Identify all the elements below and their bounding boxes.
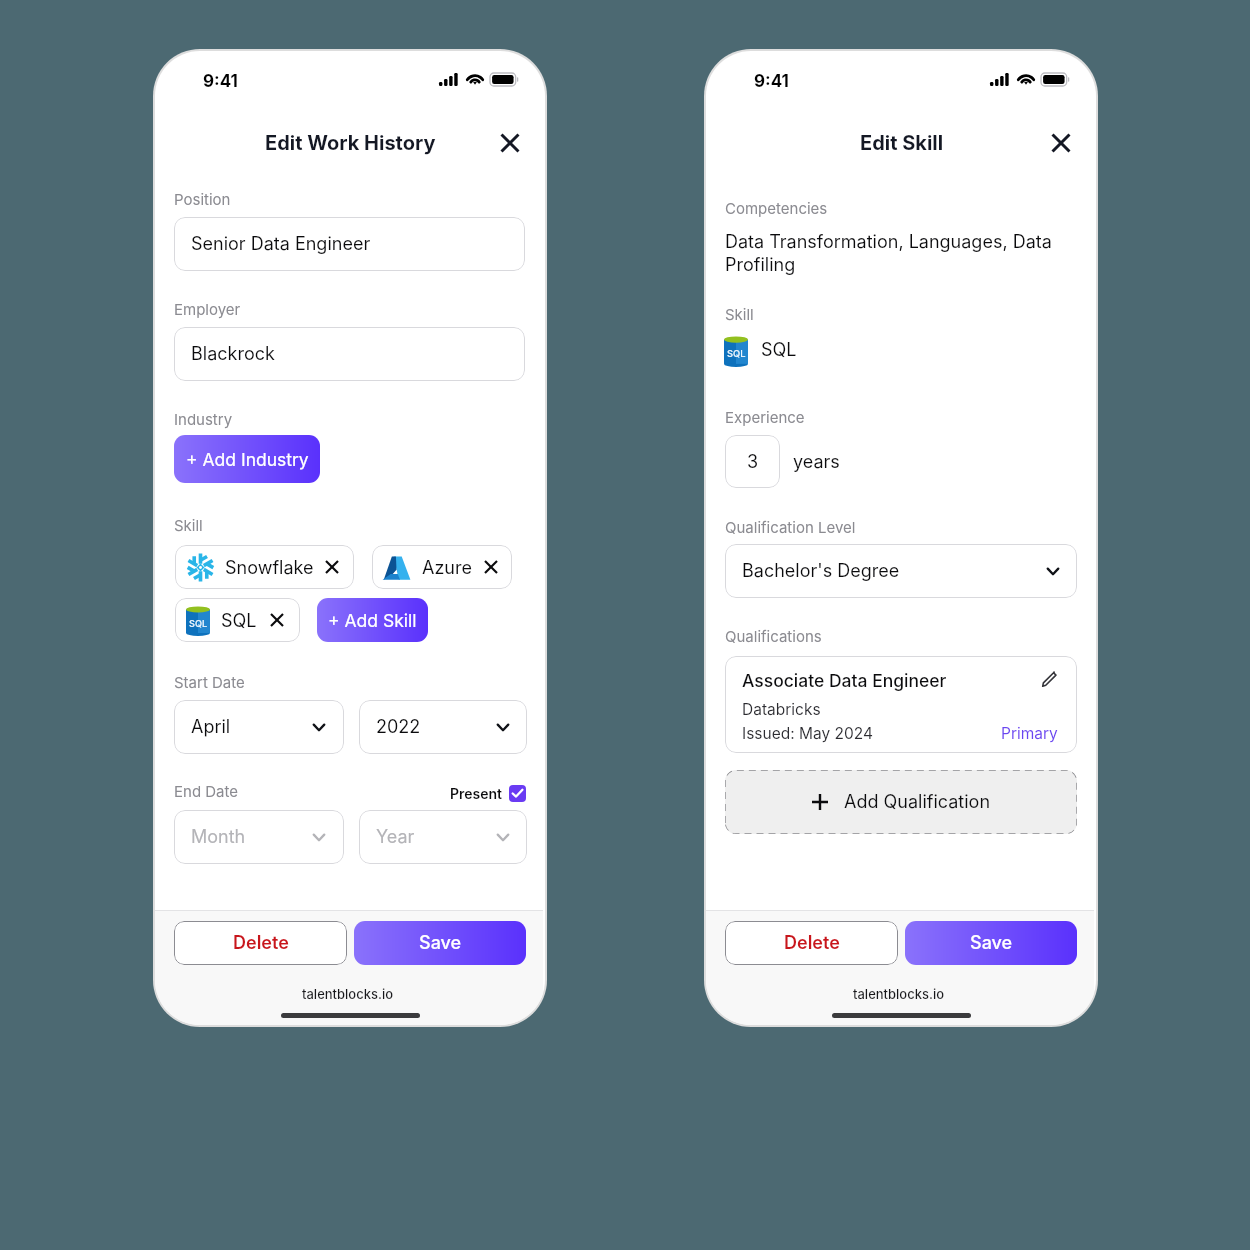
staticText: End Date <box>174 782 239 800</box>
staticText: years <box>793 451 840 473</box>
button[interactable]: Senior Data Engineer <box>174 217 525 271</box>
staticText: Issued: May 2024 <box>742 724 874 743</box>
staticText: Month <box>191 826 246 848</box>
staticText: Skill <box>725 305 754 323</box>
staticText: Bachelor's Degree <box>742 560 900 582</box>
staticText: Position <box>174 190 231 208</box>
button[interactable]: + Add Industry <box>174 435 320 483</box>
button[interactable]: Snowflake <box>175 545 354 589</box>
button[interactable]: Blackrock <box>174 327 525 381</box>
staticText: Save <box>419 932 462 954</box>
staticText: Primary <box>1001 724 1058 743</box>
staticText: Experience <box>725 408 805 426</box>
button[interactable]: Close <box>499 132 521 154</box>
staticText: Year <box>376 826 415 848</box>
staticText: Delete <box>784 932 840 954</box>
staticText: Associate Data Engineer <box>742 670 947 691</box>
staticText: 9:41 <box>203 71 238 92</box>
staticText: Databricks <box>742 700 821 719</box>
button[interactable]: 2022 <box>359 700 527 754</box>
button[interactable]: Month <box>174 810 344 864</box>
staticText: talentblocks.io <box>302 986 394 1002</box>
staticText: SQL <box>761 339 797 361</box>
button[interactable]: Edit qualification <box>1041 671 1058 688</box>
staticText: Qualification Level <box>725 518 856 536</box>
button[interactable]: 3 <box>725 435 780 488</box>
button[interactable]: Present <box>449 782 526 804</box>
button[interactable]: April <box>174 700 344 754</box>
button[interactable]: Year <box>359 810 527 864</box>
staticText: + Add Industry <box>186 449 309 470</box>
staticText: Present <box>450 785 503 802</box>
staticText: Start Date <box>174 673 245 691</box>
staticText: Add Qualification <box>844 791 991 813</box>
staticText: 9:41 <box>754 71 789 92</box>
staticText: Data Transformation, Languages, Data Pro… <box>725 231 1052 276</box>
button[interactable]: Bachelor's Degree <box>725 544 1077 598</box>
staticText: Competencies <box>725 199 828 217</box>
staticText: 3 <box>747 451 759 473</box>
staticText: Delete <box>233 932 289 954</box>
staticText: SQL <box>221 610 257 632</box>
staticText: April <box>191 716 231 738</box>
button[interactable]: SQL <box>175 598 300 642</box>
button[interactable]: + Add Skill <box>317 598 428 642</box>
staticText: Industry <box>174 410 233 428</box>
button[interactable]: Associate Data Engineer <box>725 656 1077 753</box>
button[interactable]: Save <box>354 921 526 965</box>
staticText: Blackrock <box>191 343 275 365</box>
staticText: Snowflake <box>225 557 314 579</box>
button[interactable]: Delete <box>174 921 347 965</box>
staticText: 2022 <box>376 716 421 738</box>
staticText: Employer <box>174 300 241 318</box>
staticText: Edit Work History <box>265 131 436 155</box>
button[interactable]: Delete <box>725 921 898 965</box>
staticText: Qualifications <box>725 627 822 645</box>
staticText: Azure <box>422 557 472 579</box>
staticText: Save <box>970 932 1013 954</box>
staticText: Skill <box>174 516 203 534</box>
staticText: Senior Data Engineer <box>191 233 371 255</box>
staticText: + Add Skill <box>328 610 417 631</box>
button[interactable]: Save <box>905 921 1077 965</box>
button[interactable]: Azure <box>372 545 512 589</box>
staticText: SQL <box>189 618 208 629</box>
staticText: SQL <box>727 348 746 359</box>
staticText: Edit Skill <box>860 131 944 155</box>
staticText: talentblocks.io <box>853 986 945 1002</box>
button[interactable]: Close <box>1050 132 1072 154</box>
button[interactable]: Add Qualification <box>725 770 1077 834</box>
